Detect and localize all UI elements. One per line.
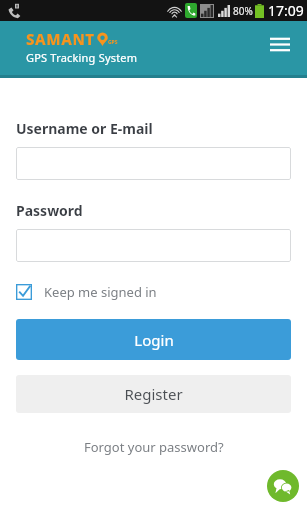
button[interactable]: Open chat support xyxy=(267,470,299,502)
staticText: SAMANT xyxy=(26,29,95,49)
button[interactable]: Register xyxy=(16,375,291,413)
button[interactable]: Forgot your password? xyxy=(76,434,232,460)
button[interactable] xyxy=(16,229,291,262)
staticText: GPS Tracking System xyxy=(26,50,138,65)
staticText: Register xyxy=(124,384,183,404)
staticText: 17:09 xyxy=(268,1,304,20)
staticText: Keep me signed in xyxy=(44,283,157,301)
staticText: Username or E-mail xyxy=(16,119,153,138)
button[interactable] xyxy=(16,147,291,180)
staticText: Forgot your password? xyxy=(84,438,224,456)
staticText: Login xyxy=(134,330,174,350)
button[interactable]: Login xyxy=(16,319,291,360)
button[interactable]: Keep me signed in xyxy=(16,281,157,303)
staticText: 80% xyxy=(233,4,253,18)
button[interactable]: SAMANT xyxy=(26,29,138,65)
staticText: Password xyxy=(16,201,83,220)
staticText: GPS xyxy=(108,39,118,46)
button[interactable]: Open navigation menu xyxy=(266,30,294,58)
